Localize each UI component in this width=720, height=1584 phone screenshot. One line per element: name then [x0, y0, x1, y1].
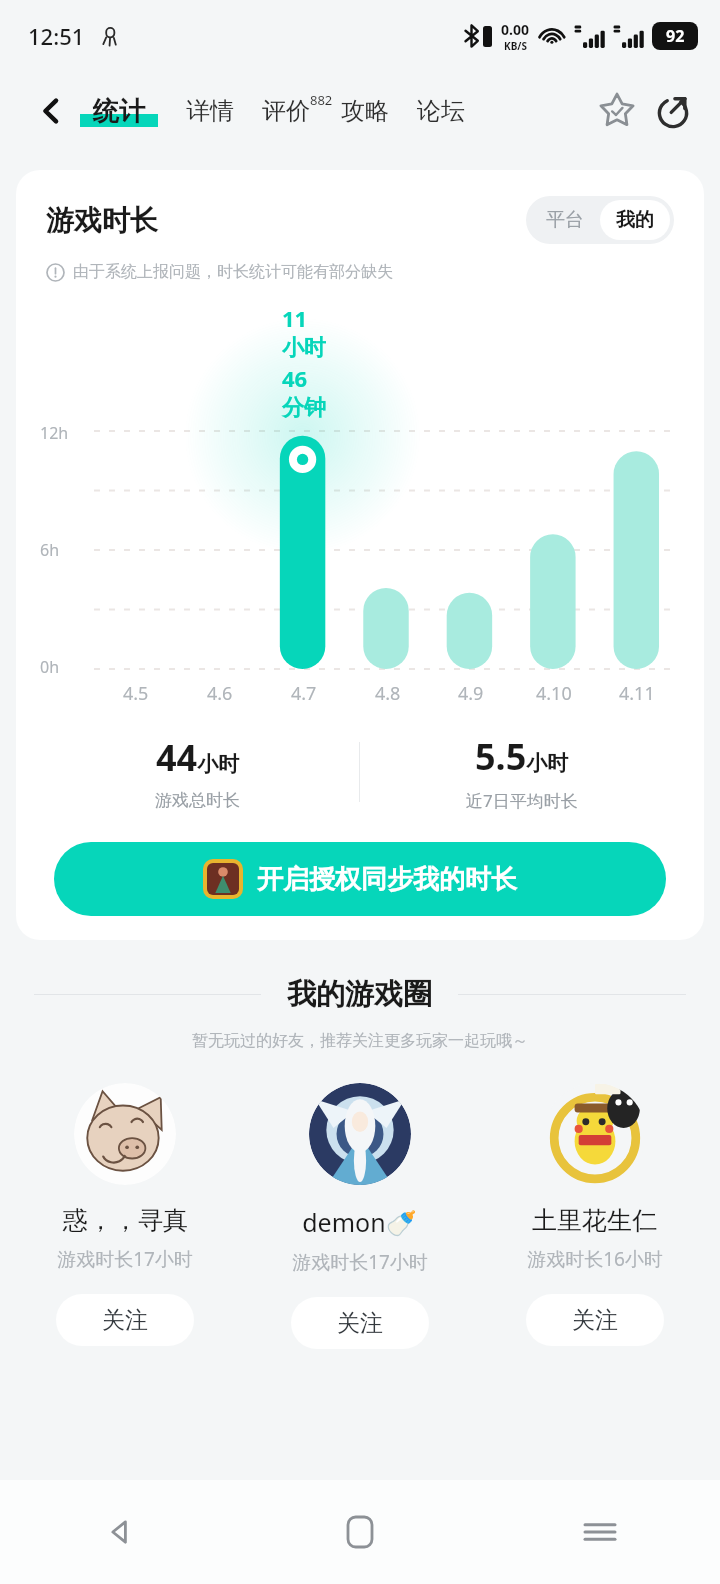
- staticText: 土里花生仁: [532, 1205, 657, 1236]
- staticText: 4.9: [458, 681, 484, 706]
- staticText: 4.7: [291, 681, 317, 706]
- staticText: 我的游戏圈: [287, 976, 432, 1013]
- staticText: 4.10: [536, 681, 572, 706]
- staticText: 6h: [40, 539, 60, 561]
- staticText: 平台: [546, 208, 584, 232]
- staticText: 0.00: [501, 20, 529, 39]
- staticText: 4.8: [375, 681, 401, 706]
- staticText: 5.5小时: [475, 732, 569, 781]
- button[interactable]: 我的: [600, 200, 670, 240]
- button[interactable]: Recent apps: [480, 1480, 720, 1584]
- staticText: KB/S: [504, 39, 527, 53]
- button[interactable]: demon🍼: [242, 1083, 477, 1349]
- staticText: 统计: [93, 95, 145, 128]
- button[interactable]: 评价: [262, 96, 333, 126]
- staticText: 我的: [616, 208, 654, 232]
- staticText: 4.5: [123, 681, 149, 706]
- staticText: 游戏时长17小时: [57, 1246, 193, 1272]
- staticText: 游戏时长16小时: [527, 1246, 663, 1272]
- button[interactable]: 开启授权同步我的时长: [54, 842, 666, 916]
- staticText: 暂无玩过的好友，推荐关注更多玩家一起玩哦～: [0, 1031, 720, 1051]
- staticText: 4.6: [207, 681, 233, 706]
- staticText: demon🍼: [302, 1205, 417, 1239]
- button[interactable]: 土里花生仁: [477, 1083, 712, 1346]
- button[interactable]: 关注: [56, 1294, 194, 1346]
- staticText: 论坛: [417, 96, 465, 126]
- staticText: 92: [666, 25, 685, 47]
- button[interactable]: Share: [650, 88, 696, 134]
- staticText: 11小时46分钟: [282, 303, 326, 422]
- staticText: 4.11: [619, 681, 655, 706]
- staticText: 关注: [572, 1306, 618, 1335]
- button[interactable]: Favorite: [594, 88, 640, 134]
- staticText: 12:51: [28, 21, 85, 51]
- staticText: 开启授权同步我的时长: [257, 863, 517, 896]
- button[interactable]: Back: [28, 88, 74, 134]
- button[interactable]: Home: [240, 1480, 480, 1584]
- button[interactable]: Back: [0, 1480, 240, 1584]
- button[interactable]: 统计: [80, 95, 158, 128]
- staticText: 44小时: [156, 733, 240, 782]
- staticText: 近7日平均时长: [466, 789, 578, 812]
- staticText: 详情: [186, 96, 234, 126]
- staticText: 关注: [102, 1306, 148, 1335]
- staticText: 攻略: [341, 96, 389, 126]
- button[interactable]: 关注: [291, 1297, 429, 1349]
- button[interactable]: 论坛: [417, 96, 465, 126]
- button[interactable]: 平台: [530, 200, 600, 240]
- button[interactable]: 详情: [186, 96, 234, 126]
- button[interactable]: 惑，，寻真: [8, 1083, 242, 1346]
- staticText: 游戏总时长: [155, 790, 240, 811]
- staticText: 游戏时长: [46, 203, 158, 238]
- staticText: 游戏时长17小时: [292, 1249, 428, 1275]
- staticText: 关注: [337, 1309, 383, 1338]
- staticText: 惑，，寻真: [63, 1205, 188, 1236]
- staticText: 12h: [40, 422, 69, 444]
- button[interactable]: 关注: [526, 1294, 664, 1346]
- staticText: 由于系统上报问题，时长统计可能有部分缺失: [73, 262, 393, 282]
- staticText: 评价: [262, 96, 310, 126]
- staticText: 0h: [40, 656, 60, 678]
- staticText: 882: [310, 91, 333, 109]
- button[interactable]: 攻略: [341, 96, 389, 126]
